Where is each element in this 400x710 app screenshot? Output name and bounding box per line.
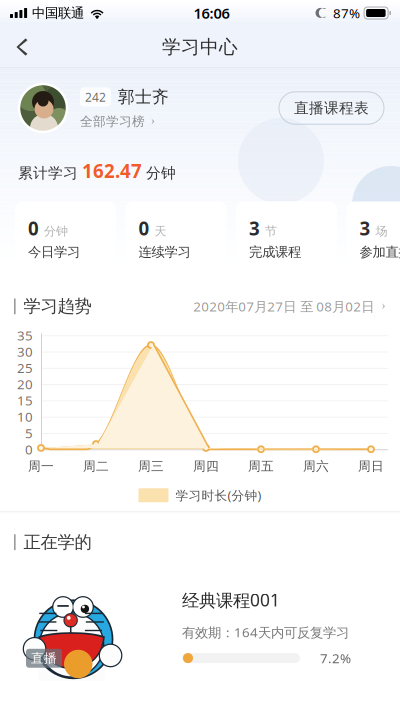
staticText: 今日学习 bbox=[28, 244, 80, 260]
staticText: 10 bbox=[17, 408, 33, 426]
staticText: 35 bbox=[17, 326, 33, 344]
staticText: 242 bbox=[85, 89, 106, 105]
staticText: 周二 bbox=[83, 458, 109, 474]
button[interactable]: 2020年07月27日 至 08月02日 bbox=[193, 297, 386, 315]
button[interactable]: 全部学习榜 bbox=[80, 113, 155, 129]
staticText: 0 bbox=[138, 215, 149, 241]
staticText: 学习趋势 bbox=[24, 295, 92, 317]
button[interactable]: 直播 bbox=[12, 568, 388, 692]
staticText: 周一 bbox=[28, 458, 54, 474]
staticText: 经典课程001 bbox=[182, 588, 280, 612]
staticText: 完成课程 bbox=[249, 244, 301, 260]
staticText: 3 bbox=[359, 215, 370, 241]
button[interactable]: 直播课程表 bbox=[279, 92, 384, 124]
staticText: 30 bbox=[17, 342, 33, 361]
staticText: 周三 bbox=[138, 458, 164, 474]
staticText: 7.2% bbox=[320, 649, 351, 667]
staticText: 累计学习 bbox=[18, 164, 82, 182]
staticText: 3 bbox=[249, 215, 260, 241]
staticText: 5 bbox=[25, 424, 33, 442]
staticText: 周六 bbox=[303, 458, 329, 474]
staticText: 周五 bbox=[248, 458, 274, 474]
staticText: 参加直播 bbox=[359, 244, 400, 260]
staticText: 学习时长(分钟) bbox=[175, 487, 261, 504]
staticText: 有效期：164天内可反复学习 bbox=[182, 623, 349, 641]
staticText: 分钟 bbox=[142, 164, 176, 182]
staticText: 87% bbox=[333, 4, 360, 22]
staticText: 中国联通 bbox=[32, 5, 84, 21]
staticText: 0 bbox=[28, 215, 39, 241]
staticText: 节 bbox=[265, 224, 277, 239]
staticText: 直播 bbox=[31, 650, 57, 666]
staticText: 16:06 bbox=[194, 3, 230, 23]
staticText: 天 bbox=[154, 224, 166, 239]
staticText: 郭士齐 bbox=[118, 86, 169, 107]
staticText: 2020年07月27日 至 08月02日 bbox=[193, 297, 374, 315]
staticText: 全部学习榜 bbox=[80, 113, 145, 129]
button[interactable]: Back bbox=[0, 27, 44, 67]
staticText: 学习中心 bbox=[162, 35, 238, 59]
staticText: 场 bbox=[375, 224, 387, 239]
staticText: 15 bbox=[17, 391, 33, 409]
staticText: 0 bbox=[25, 440, 33, 458]
staticText: 直播课程表 bbox=[294, 99, 369, 117]
staticText: 20 bbox=[17, 375, 33, 393]
staticText: 周四 bbox=[193, 458, 219, 474]
staticText: 25 bbox=[17, 359, 33, 377]
staticText: 162.47 bbox=[82, 158, 142, 183]
staticText: 分钟 bbox=[44, 224, 68, 239]
staticText: 连续学习 bbox=[138, 244, 190, 260]
staticText: 正在学的 bbox=[24, 531, 92, 553]
staticText: 周日 bbox=[358, 458, 384, 474]
